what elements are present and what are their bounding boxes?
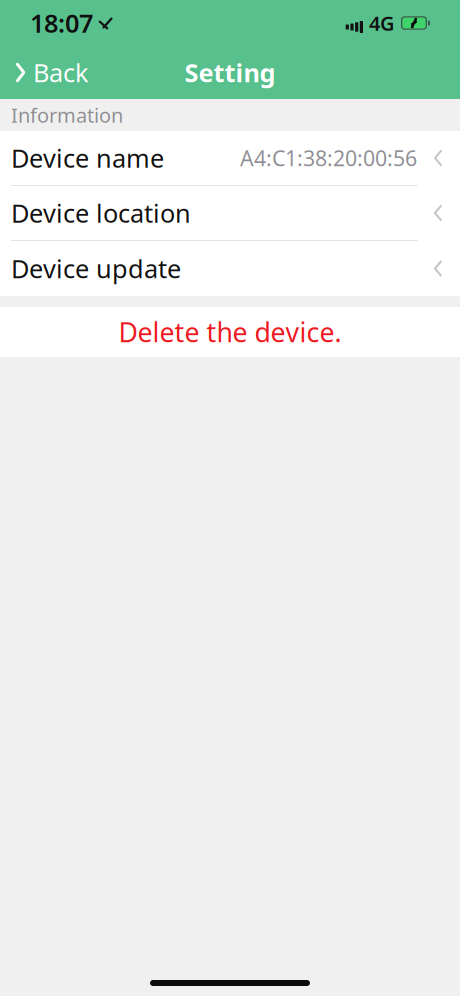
staticText: Information — [11, 102, 123, 128]
button[interactable]: Delete the device. — [0, 307, 460, 357]
staticText: Device name — [11, 141, 164, 175]
button[interactable]: Back — [0, 46, 103, 99]
staticText: A4:C1:38:20:00:56 — [240, 144, 417, 172]
button[interactable]: Device name — [0, 131, 460, 186]
staticText: 4G — [369, 10, 395, 36]
staticText: Delete the device. — [118, 314, 341, 350]
staticText: Device update — [11, 252, 181, 285]
staticText: 18:07 — [30, 6, 93, 40]
button[interactable]: Device location — [0, 186, 460, 241]
staticText: Device location — [11, 196, 191, 230]
staticText: Back — [33, 56, 89, 89]
button[interactable]: Device update — [0, 241, 460, 296]
staticText: Setting — [184, 56, 275, 89]
